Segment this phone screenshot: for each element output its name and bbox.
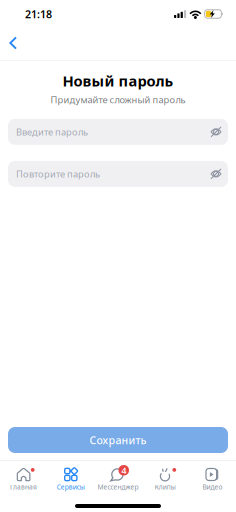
staticText: Сервисы [57, 482, 85, 491]
button[interactable]: Show password [204, 161, 228, 187]
button[interactable]: Клипы [142, 462, 189, 502]
button[interactable]: Back [0, 25, 43, 61]
staticText: 4 [121, 464, 126, 476]
button[interactable]: Show password [204, 119, 228, 145]
button[interactable]: Главная [0, 462, 47, 502]
staticText: Сохранить [89, 433, 146, 447]
button[interactable]: Сохранить [8, 427, 228, 453]
staticText: Главная [10, 482, 37, 491]
button[interactable]: Видео [189, 462, 236, 502]
button[interactable]: 4 [94, 462, 142, 502]
staticText: Мессенджер [97, 482, 138, 491]
staticText: Повторите пароль [16, 168, 100, 180]
staticText: Придумайте сложный пароль [50, 93, 185, 106]
staticText: Видео [202, 482, 222, 491]
staticText: Введите пароль [16, 126, 88, 138]
staticText: 21:18 [25, 7, 52, 21]
staticText: Клипы [155, 482, 176, 491]
staticText: Новый пароль [62, 71, 173, 90]
button[interactable]: Сервисы [47, 462, 94, 502]
